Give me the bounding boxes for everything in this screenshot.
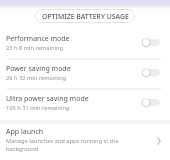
staticText: Power saving mode (6, 64, 71, 74)
staticText: 26 h 32 min remaining (6, 74, 67, 82)
other: Toggle (142, 68, 160, 77)
staticText: 105 h 31 min remaining (6, 104, 70, 112)
other: Open App launch (154, 135, 166, 147)
other: Toggle (142, 38, 160, 47)
button[interactable]: OPTIMIZE BATTERY USAGE (35, 9, 135, 23)
button[interactable]: Power saving mode (0, 58, 170, 88)
staticText: 23 h 8 min remaining (6, 44, 63, 52)
staticText: Performance mode (6, 34, 70, 44)
staticText: App launch (6, 127, 43, 137)
other: Toggle (142, 98, 160, 107)
button[interactable]: Ultra power saving mode (0, 88, 170, 118)
button[interactable]: Performance mode (0, 28, 170, 58)
button[interactable]: App launch (0, 122, 170, 160)
staticText: Ultra power saving mode (6, 94, 89, 104)
staticText: OPTIMIZE BATTERY USAGE (42, 12, 129, 21)
staticText: Manage launches and apps running in the … (6, 137, 122, 153)
